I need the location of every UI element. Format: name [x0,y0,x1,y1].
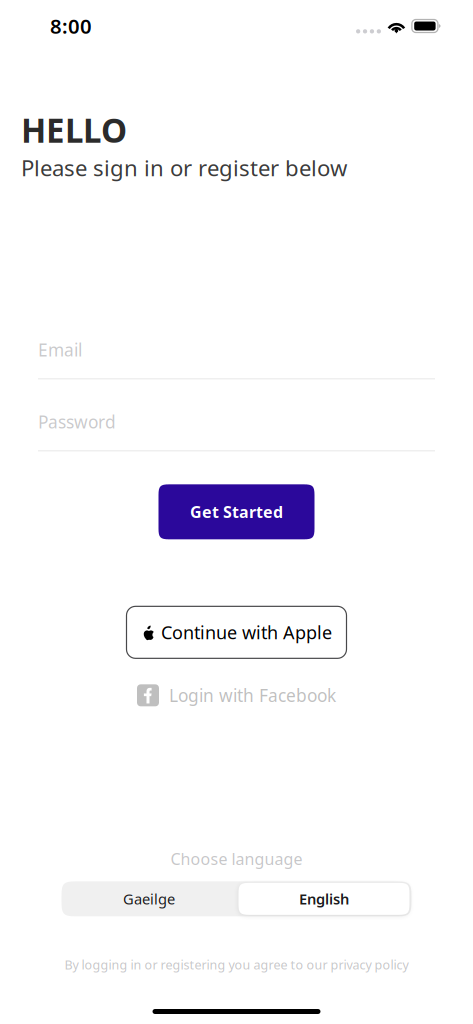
button[interactable]: Gaeilge [61,881,236,916]
staticText: HELLO [21,108,127,152]
staticText: Please sign in or register below [21,153,347,182]
staticText: Get Started [190,501,283,522]
button[interactable]: Continue with Apple [126,606,346,658]
staticText: Continue with Apple [161,620,332,644]
staticText: Gaeilge [123,889,175,909]
button[interactable]: English [238,883,409,915]
staticText: By logging in or registering you agree t… [64,956,408,973]
staticText: Password [38,410,116,433]
staticText: 8:00 [50,12,92,39]
staticText: English [299,889,349,909]
staticText: Email [38,338,82,361]
staticText: Login with Facebook [169,684,336,707]
button[interactable]: Get Started [158,484,314,539]
staticText: Choose language [170,848,302,869]
button[interactable]: Login with Facebook [137,680,336,710]
